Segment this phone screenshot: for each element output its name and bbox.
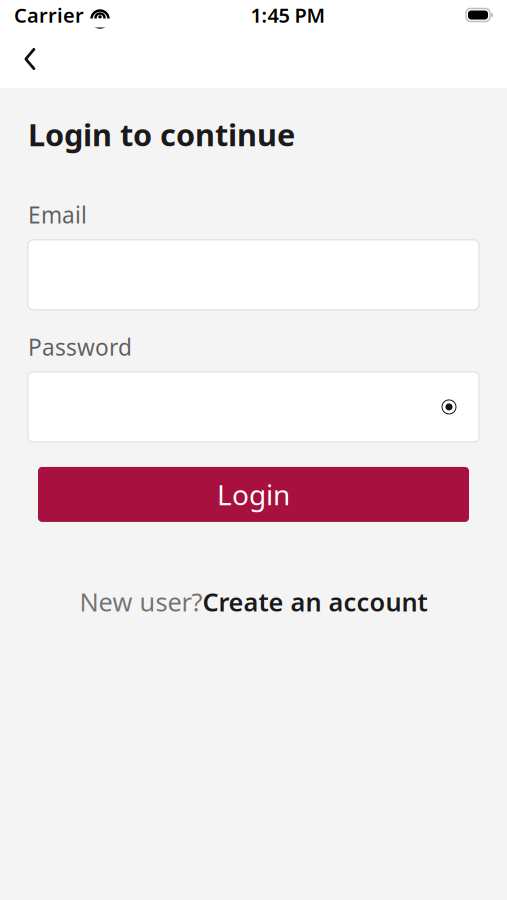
staticText: Password bbox=[28, 332, 132, 362]
staticText: Login to continue bbox=[28, 114, 295, 155]
staticText: Carrier bbox=[14, 2, 84, 28]
staticText: Email bbox=[28, 200, 87, 230]
staticText: Create an account bbox=[202, 585, 427, 618]
staticText: New user? bbox=[79, 585, 202, 618]
button[interactable]: Back bbox=[8, 37, 52, 81]
staticText: 1:45 PM bbox=[250, 2, 325, 28]
staticText: Login bbox=[217, 476, 290, 513]
button[interactable]: Show password bbox=[427, 385, 471, 429]
button[interactable]: Login bbox=[38, 467, 469, 522]
button[interactable]: Create an account bbox=[202, 585, 427, 618]
